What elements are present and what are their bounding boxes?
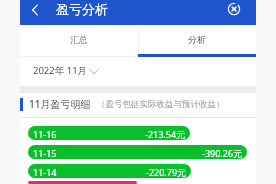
staticText: 盈亏分析: [56, 1, 108, 17]
staticText: 分析: [188, 34, 206, 45]
staticText: 11-14: [33, 166, 57, 178]
staticText: -213.54元: [145, 128, 186, 140]
staticText: -220.79元: [146, 166, 187, 178]
button[interactable]: 2022年 11月: [33, 64, 99, 77]
button[interactable]: Back: [25, 0, 45, 20]
staticText: 11月盈亏明细: [29, 97, 91, 111]
staticText: 11-16: [33, 128, 57, 140]
button[interactable]: 11-16: [28, 126, 190, 140]
button[interactable]: 11-14: [28, 164, 191, 178]
staticText: 2022年 11月: [33, 64, 88, 77]
button[interactable]: 汇总: [20, 25, 138, 57]
staticText: 汇总: [70, 34, 88, 45]
staticText: 11-15: [33, 147, 57, 159]
staticText: （盈亏包括实际收益与预计收益）: [97, 99, 225, 110]
staticText: -390.26元: [202, 147, 243, 159]
button[interactable]: 11-13: [28, 181, 137, 184]
button[interactable]: 分析: [138, 25, 256, 57]
button[interactable]: Close: [224, 0, 244, 19]
button[interactable]: 11-15: [28, 145, 247, 159]
